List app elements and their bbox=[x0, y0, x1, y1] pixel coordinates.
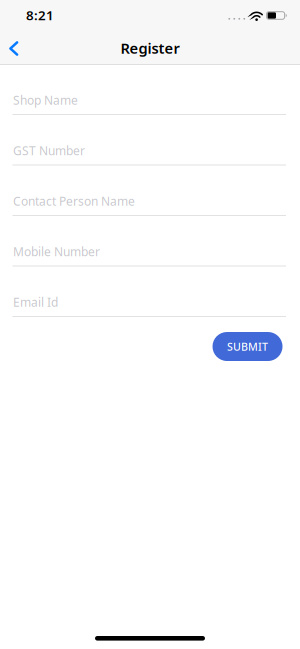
button[interactable]: Back bbox=[0, 32, 29, 64]
staticText: 8:21 bbox=[26, 6, 54, 24]
staticText: Email Id bbox=[13, 294, 58, 310]
button[interactable]: Contact Person Name bbox=[12, 195, 286, 216]
button[interactable]: GST Number bbox=[12, 145, 286, 165]
staticText: Register bbox=[120, 38, 179, 58]
staticText: Contact Person Name bbox=[13, 193, 135, 209]
staticText: Shop Name bbox=[13, 92, 78, 108]
staticText: SUBMIT bbox=[227, 339, 268, 354]
button[interactable]: Mobile Number bbox=[12, 246, 286, 266]
staticText: Mobile Number bbox=[13, 244, 100, 260]
button[interactable]: Email Id bbox=[12, 296, 286, 317]
staticText: GST Number bbox=[13, 143, 85, 159]
button[interactable]: Shop Name bbox=[12, 94, 286, 115]
button[interactable]: SUBMIT bbox=[212, 332, 282, 361]
